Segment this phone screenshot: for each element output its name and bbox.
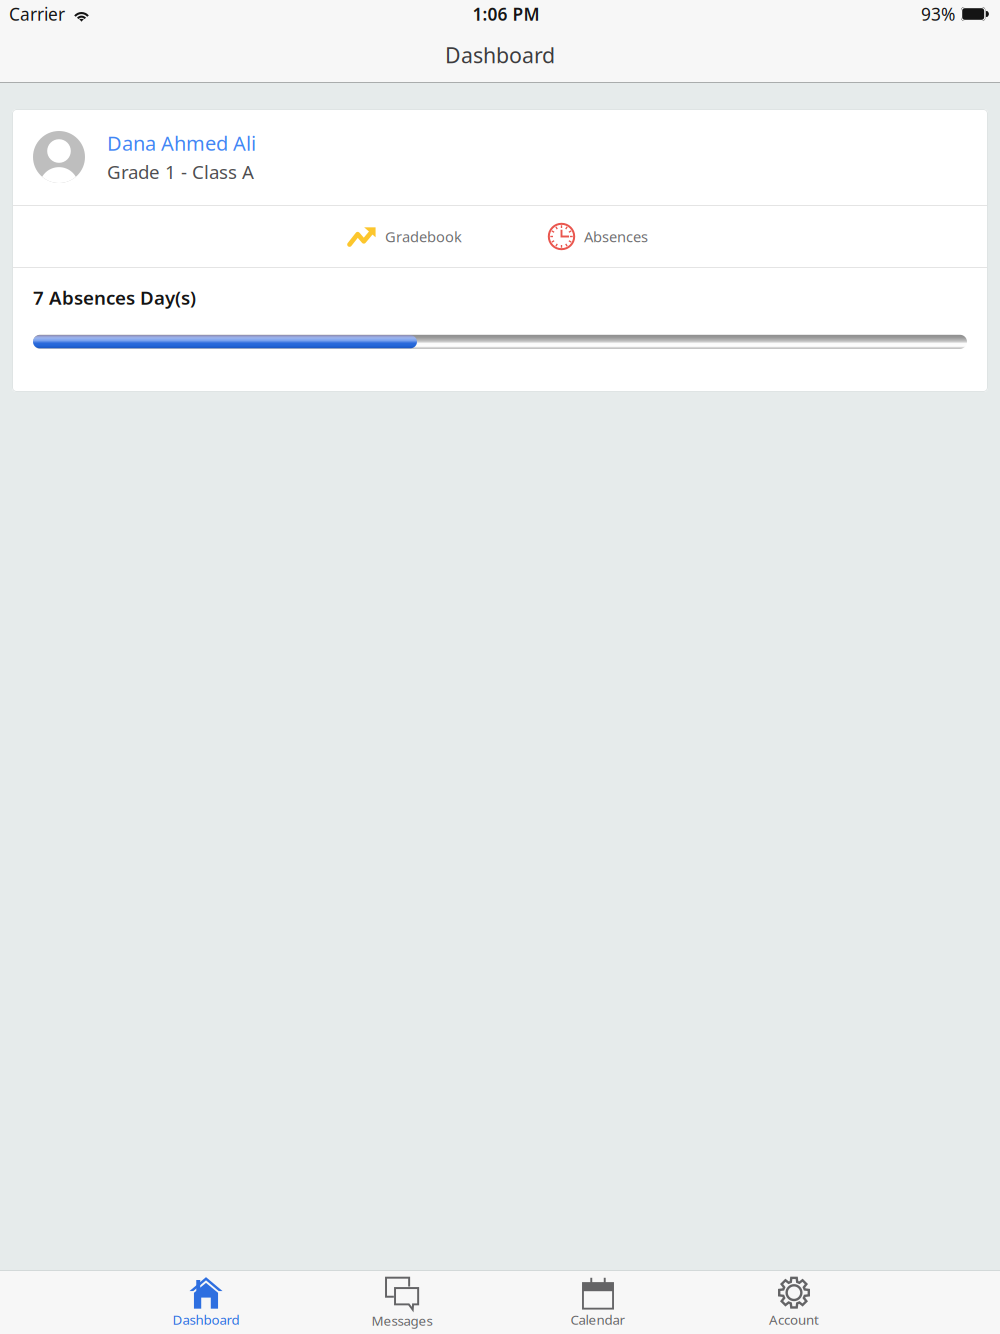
staticText: Calendar <box>570 1311 625 1328</box>
staticText: 93% <box>921 2 955 25</box>
button[interactable]: Absences <box>548 223 648 250</box>
staticText: Absences <box>584 227 648 246</box>
staticText: Messages <box>371 1312 432 1329</box>
staticText: Grade 1 - Class A <box>107 159 254 184</box>
staticText: 7 Absences Day(s) <box>33 285 196 310</box>
button[interactable]: Account <box>696 1271 892 1334</box>
button[interactable]: Dashboard <box>108 1271 304 1334</box>
staticText: Dana Ahmed Ali <box>107 130 256 156</box>
staticText: Carrier <box>9 2 65 25</box>
button[interactable]: Gradebook <box>348 226 462 246</box>
staticText: Dashboard <box>172 1311 239 1328</box>
staticText: Dashboard <box>445 41 555 69</box>
staticText: 1:06 PM <box>472 2 539 25</box>
button[interactable]: Messages <box>304 1271 500 1334</box>
button[interactable]: Dana Ahmed Ali <box>12 109 988 205</box>
staticText: Gradebook <box>385 227 462 246</box>
button[interactable]: Calendar <box>500 1271 696 1334</box>
staticText: Account <box>769 1311 819 1328</box>
